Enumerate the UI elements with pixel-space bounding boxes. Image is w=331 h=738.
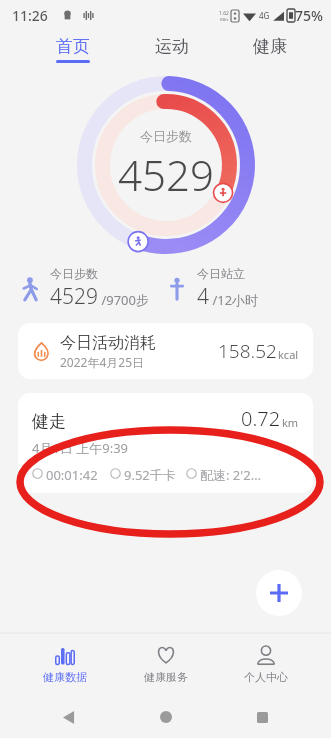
staticText: 4529 xyxy=(50,282,98,311)
staticText: km xyxy=(282,415,299,430)
staticText: 健康 xyxy=(253,36,287,57)
staticText: 75% xyxy=(295,6,323,25)
staticText: 今日步数 xyxy=(140,128,192,144)
button[interactable]: 健康 xyxy=(249,34,291,65)
staticText: 4529 xyxy=(118,146,214,203)
staticText: 4 xyxy=(197,282,209,311)
button[interactable]: 今日步数 xyxy=(18,266,165,311)
staticText: kcal xyxy=(278,347,299,362)
button[interactable]: 个人中心 xyxy=(230,640,302,688)
button[interactable]: Add record xyxy=(256,570,302,616)
button[interactable]: Home xyxy=(151,702,181,732)
staticText: 1.62 xyxy=(219,10,229,17)
staticText: 今日步数 xyxy=(50,266,98,281)
staticText: 9.52千卡 xyxy=(124,466,176,481)
button[interactable]: Back xyxy=(54,702,84,732)
staticText: 4月1日 上午9:39 xyxy=(32,439,129,457)
staticText: 2022年4月25日 xyxy=(60,354,145,370)
staticText: 今日活动消耗 xyxy=(60,333,156,353)
staticText: KB/s xyxy=(220,17,229,22)
staticText: 0.72 xyxy=(241,405,281,432)
staticText: 个人中心 xyxy=(244,670,288,684)
staticText: 运动 xyxy=(155,36,189,57)
button[interactable]: 运动 xyxy=(151,34,193,65)
staticText: 11:26 xyxy=(12,6,48,25)
staticText: 健康服务 xyxy=(144,670,188,684)
button[interactable]: 健走 xyxy=(18,393,313,493)
staticText: 00:01:42 xyxy=(46,466,98,481)
staticText: 健走 xyxy=(32,411,66,432)
button[interactable]: 健康数据 xyxy=(29,640,101,688)
button[interactable]: 首页 xyxy=(52,34,94,65)
button[interactable]: 今日站立 xyxy=(165,266,313,311)
staticText: /9700步 xyxy=(98,291,149,309)
button[interactable]: 健康服务 xyxy=(130,640,202,688)
button[interactable]: Recents xyxy=(247,702,277,732)
staticText: 配速: 2'2… xyxy=(200,466,261,481)
staticText: 首页 xyxy=(56,36,90,57)
button[interactable]: 今日活动消耗 xyxy=(18,323,313,379)
staticText: 今日站立 xyxy=(197,266,245,281)
staticText: 4G xyxy=(259,10,270,21)
staticText: 健康数据 xyxy=(43,670,87,684)
staticText: 158.52 xyxy=(218,338,277,364)
staticText: /12小时 xyxy=(209,291,259,309)
